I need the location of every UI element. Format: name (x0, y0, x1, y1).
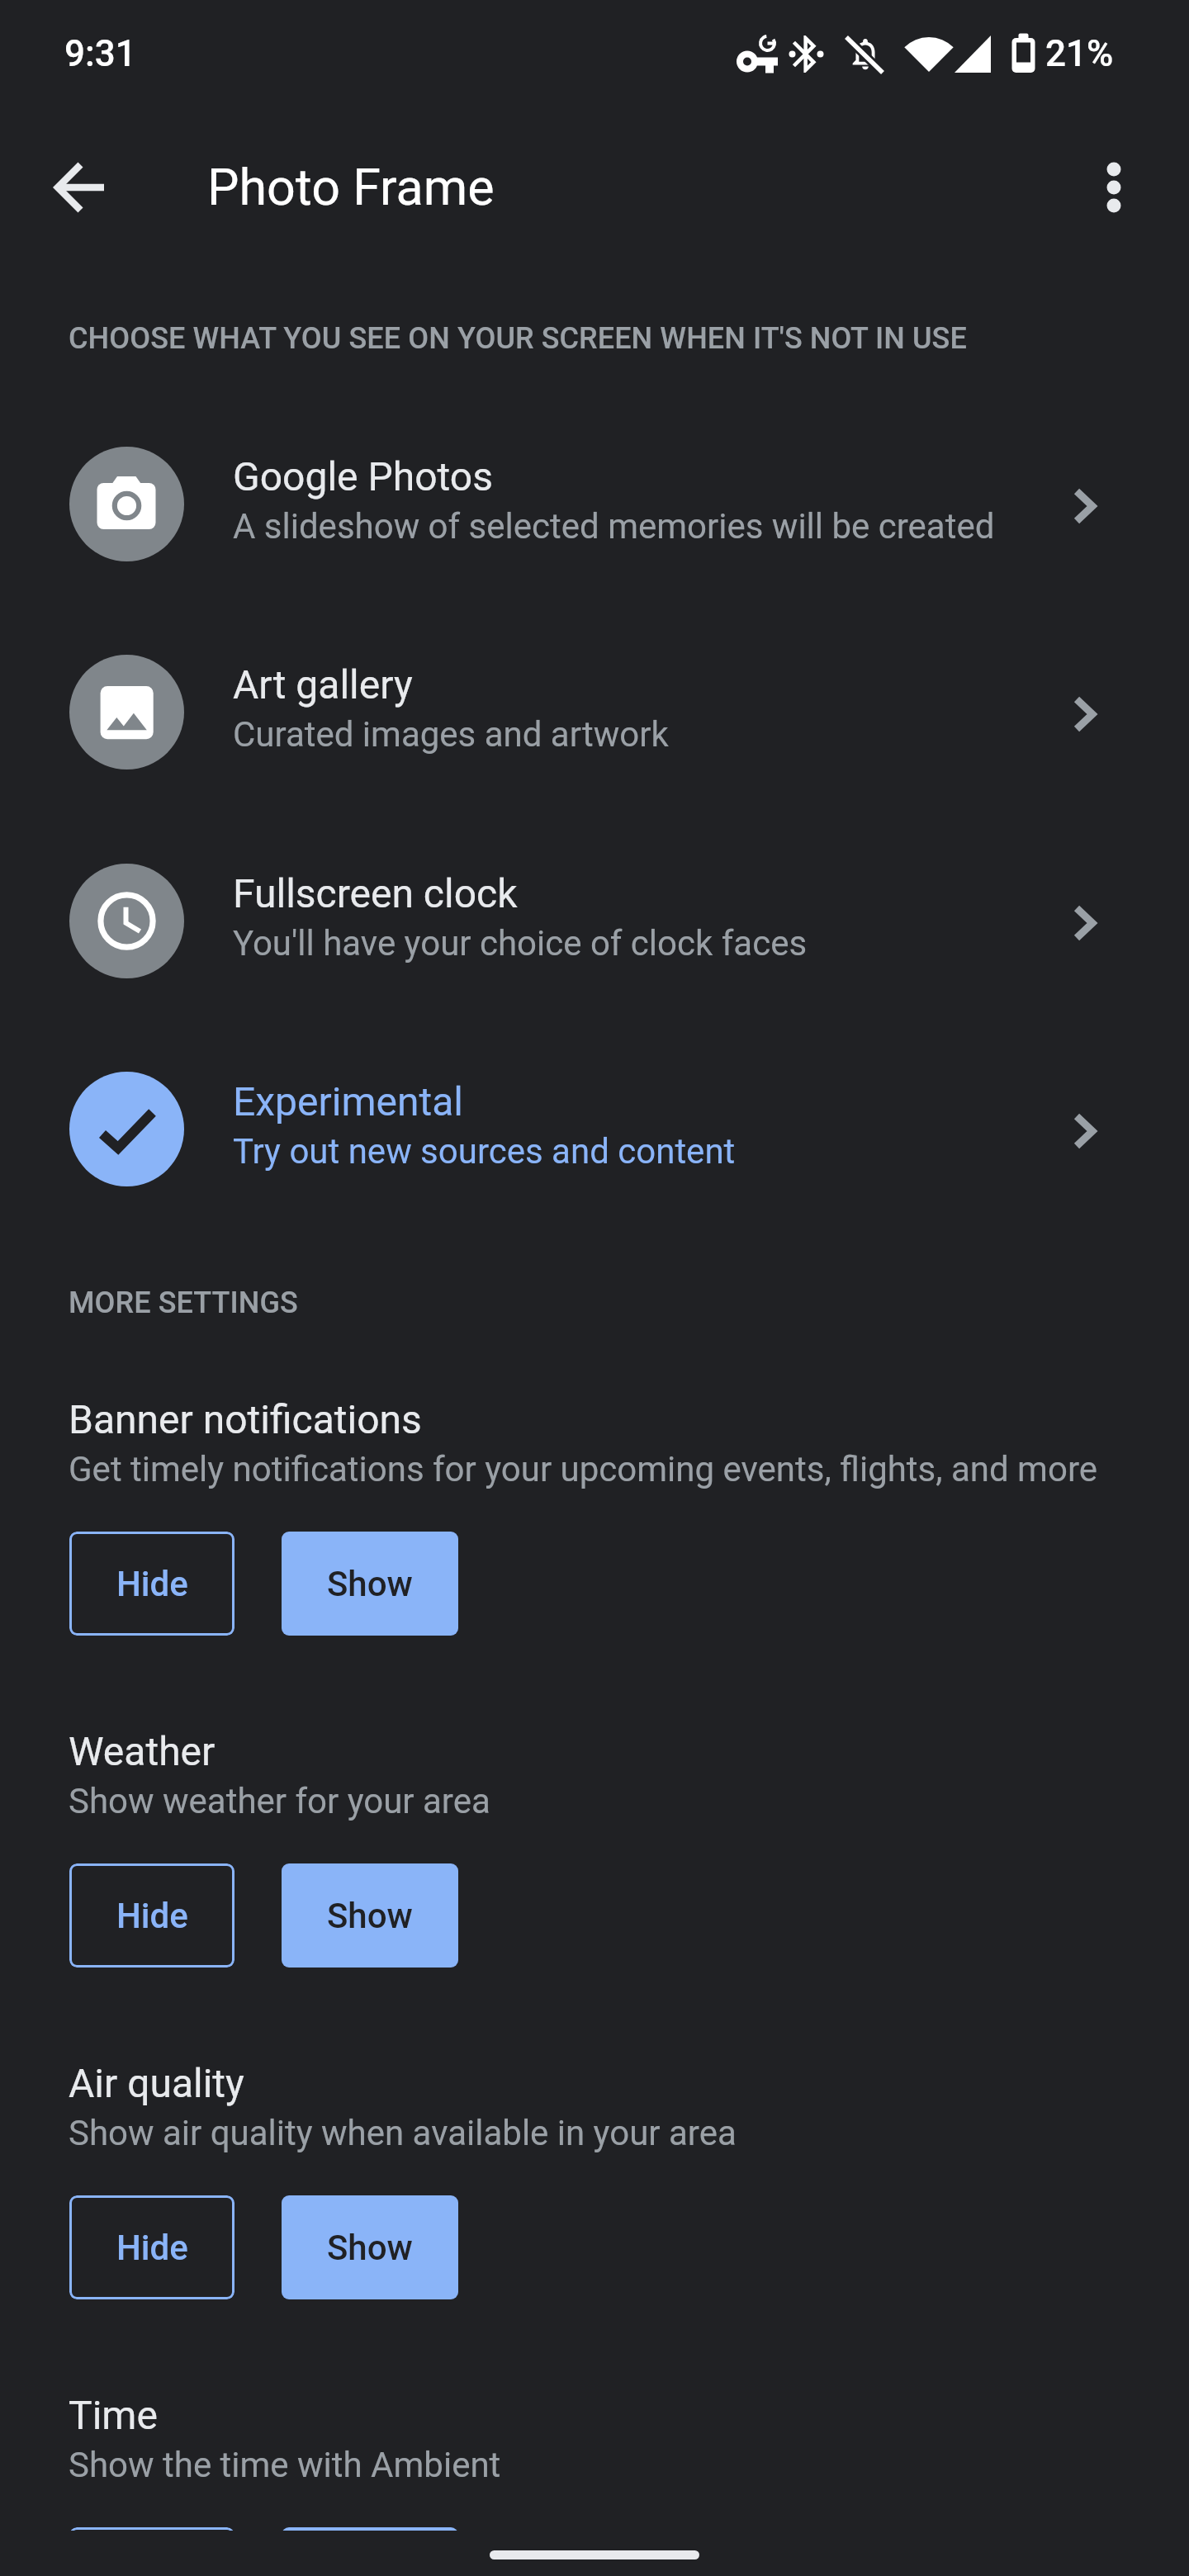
button[interactable]: Fullscreen clock (0, 831, 1189, 1012)
button[interactable]: More options (1056, 130, 1172, 245)
staticText: Show the time with Ambient (69, 2445, 501, 2485)
staticText: Show weather for your area (69, 1781, 490, 1821)
staticText: Show air quality when available in your … (69, 2113, 737, 2153)
staticText: Try out new sources and content (233, 1131, 736, 1172)
staticText: 21% (1045, 32, 1114, 75)
staticText: Experimental (233, 1078, 463, 1125)
button[interactable]: Experimental (0, 1039, 1189, 1220)
staticText: Google Photos (233, 453, 493, 500)
staticText: 9:31 (64, 32, 136, 75)
button[interactable]: Show (282, 2195, 458, 2299)
staticText: Art gallery (233, 661, 413, 708)
button[interactable]: Hide (69, 1532, 234, 1636)
staticText: CHOOSE WHAT YOU SEE ON YOUR SCREEN WHEN … (69, 321, 967, 356)
button[interactable]: Art gallery (0, 622, 1189, 803)
staticText: A slideshow of selected memories will be… (233, 506, 995, 547)
staticText: You'll have your choice of clock faces (233, 923, 808, 964)
staticText: Fullscreen clock (233, 870, 518, 916)
staticText: Hide (116, 2228, 188, 2268)
button[interactable]: Hide (69, 2527, 234, 2531)
button[interactable]: Show (282, 2527, 458, 2531)
staticText: Show (327, 1896, 413, 1936)
button[interactable]: Hide (69, 2195, 234, 2299)
staticText: Photo Frame (207, 158, 495, 216)
staticText: Banner notifications (69, 1396, 422, 1442)
button[interactable]: Show (282, 1532, 458, 1636)
staticText: Air quality (69, 2060, 244, 2106)
staticText: Hide (116, 1564, 188, 1604)
button[interactable]: Google Photos (0, 414, 1189, 595)
staticText: Show (327, 2228, 413, 2268)
button[interactable]: Hide (69, 1863, 234, 1968)
staticText: Show (327, 1564, 413, 1604)
staticText: Curated images and artwork (233, 714, 669, 755)
staticText: Get timely notifications for your upcomi… (69, 1449, 1098, 1489)
staticText: MORE SETTINGS (69, 1286, 298, 1320)
staticText: Time (69, 2392, 158, 2438)
staticText: Weather (69, 1728, 216, 1774)
staticText: Hide (116, 1896, 188, 1936)
button[interactable]: Show (282, 1863, 458, 1968)
button[interactable]: Back (23, 130, 139, 245)
